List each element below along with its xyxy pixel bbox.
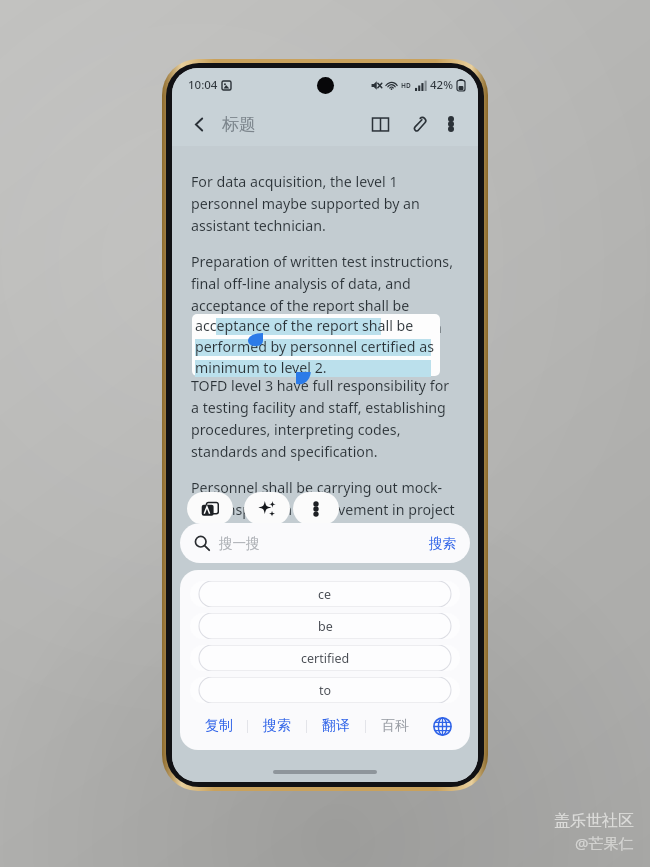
button[interactable]: ce xyxy=(190,581,460,607)
button[interactable]: More xyxy=(293,492,339,525)
staticText: 搜一搜 xyxy=(219,535,260,552)
button[interactable]: Translate xyxy=(187,492,233,525)
staticText: 标题 xyxy=(222,114,256,135)
button[interactable]: More options xyxy=(436,109,466,139)
staticText: Personnel shall be carrying out mock-up … xyxy=(191,478,459,519)
button[interactable]: Reading mode xyxy=(364,108,396,140)
staticText: 搜索 xyxy=(263,717,291,735)
button[interactable]: be xyxy=(190,613,460,639)
staticText: 复制 xyxy=(205,717,233,735)
staticText: 盖乐世社区 xyxy=(554,811,634,831)
staticText: For data acquisition, the level 1 person… xyxy=(191,172,459,235)
staticText: be xyxy=(318,618,333,635)
staticText: to xyxy=(319,682,332,699)
staticText: ce xyxy=(318,586,332,603)
staticText: @芒果仁 xyxy=(575,833,634,853)
staticText: 百科 xyxy=(381,717,409,735)
staticText: HD xyxy=(401,81,411,90)
staticText: minimum to level 2. xyxy=(195,358,327,377)
button[interactable]: Web xyxy=(424,712,460,740)
staticText: certified xyxy=(301,650,350,667)
staticText: 42% xyxy=(430,77,453,93)
button[interactable]: 翻译 xyxy=(307,712,365,740)
button[interactable]: 百科 xyxy=(366,712,424,740)
staticText: performed by personnel certified as a xyxy=(195,337,440,358)
staticText: TOFD level 3 have full responsibility fo… xyxy=(191,376,459,461)
button[interactable]: 搜索 xyxy=(248,712,306,740)
staticText: 搜索 xyxy=(429,535,456,552)
staticText: Preparation of written test instructions… xyxy=(191,252,459,359)
button[interactable]: to xyxy=(190,677,460,703)
button[interactable]: 复制 xyxy=(190,712,247,740)
button[interactable]: AI assist xyxy=(244,492,290,525)
button[interactable]: certified xyxy=(190,645,460,671)
button[interactable]: 搜一搜 xyxy=(180,523,470,563)
button[interactable]: Back xyxy=(184,109,214,139)
staticText: acceptance of the report shall be xyxy=(195,316,414,335)
button[interactable]: Attachment xyxy=(402,108,434,140)
staticText: 10:04 xyxy=(188,77,218,93)
staticText: 8inspection. xyxy=(191,519,459,538)
staticText: 翻译 xyxy=(322,717,350,735)
